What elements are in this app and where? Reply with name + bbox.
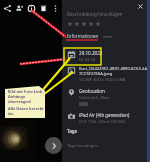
staticText: mehr [103,34,113,39]
staticText: Di, 04:34 [79,57,96,62]
staticText: Österreich, Wien. [79,95,111,100]
staticText: übertragen! [8,99,32,104]
staticText: iPad Air (4th generation) [79,112,130,118]
button[interactable]: iPad Air (4th generation) [67,112,145,124]
staticText: Informationen [67,33,99,39]
staticText: Geolocation [79,88,105,94]
staticText: 29.10.2022 [79,50,103,56]
staticText: f/1.8 1/10s 3.0mm ISO1600 [79,119,125,124]
button[interactable]: mehr [103,34,113,39]
button[interactable]: 29.10.2022 [67,50,142,62]
staticText: Tags [67,128,77,134]
button[interactable]: Info [25,0,37,16]
button[interactable]: Share [1,0,13,16]
button[interactable]: Kurt_D6422957-4897-4890-8C63-4A7CC5F2766… [67,66,147,82]
staticText: da. [8,111,14,116]
staticText: Kurt_D6422957-4897-4890-8C63-4A7CC5F2766… [79,66,147,76]
button[interactable]: Next photo [45,137,62,154]
button[interactable]: Beschreibung hinzufügen [62,10,147,18]
staticText: Beschreibung hinzufügen [67,11,123,17]
button[interactable]: Tags hinzufügen [62,141,147,149]
button[interactable]: More options [49,0,61,16]
button[interactable]: Delete [37,0,49,16]
button[interactable]: Close [136,2,145,11]
button[interactable]: Geolocation [67,88,142,106]
button[interactable]: Add person [13,0,25,16]
button[interactable] [67,21,102,27]
staticText: Anhänge [8,94,26,99]
staticText: Alle Daten korrekt [8,106,44,111]
staticText: 13.2 MP 4032 x 3024 2.0 MB [79,77,126,82]
staticText: Tags hinzufügen [67,143,98,148]
staticText: Bild mit Foto-Link- [8,89,44,94]
